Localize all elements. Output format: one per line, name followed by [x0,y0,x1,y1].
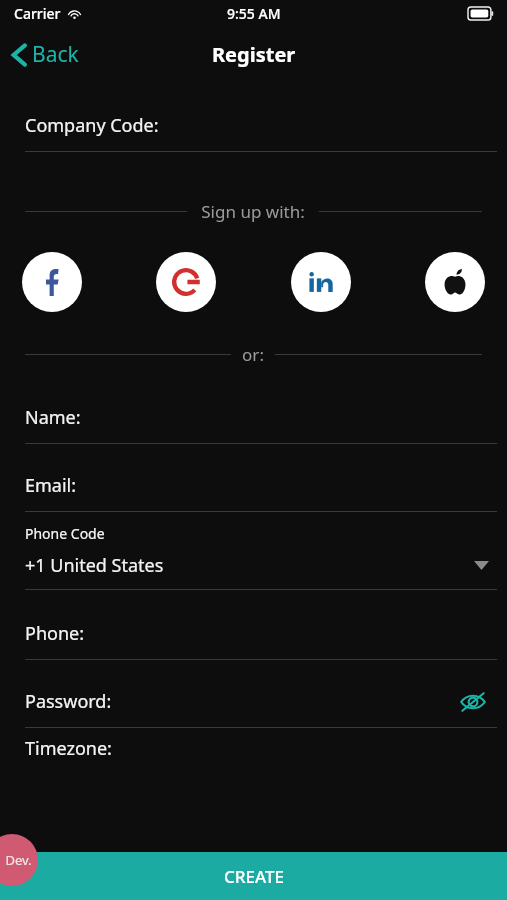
button[interactable]: Sign up with LinkedIn [291,252,351,312]
button[interactable]: +1 United States [0,553,507,578]
button[interactable]: CREATE [0,852,507,900]
staticText: Email: [25,473,77,498]
staticText: Phone Code [25,524,105,543]
staticText: 9:55 AM [227,4,281,23]
staticText: or: [242,343,264,366]
staticText: Company Code: [25,113,159,138]
button[interactable]: Back [0,34,93,75]
button[interactable]: Sign up with Apple [425,252,485,312]
button[interactable]: Sign up with Facebook [22,252,82,312]
staticText: Timezone: [25,736,112,761]
staticText: Name: [25,405,81,430]
staticText: Sign up with: [201,200,305,223]
button[interactable]: Show password [459,691,507,713]
staticText: Password: [25,689,112,714]
button[interactable]: Dev. [0,834,38,886]
staticText: Phone: [25,621,85,646]
staticText: Register [212,41,296,68]
button[interactable]: Sign up with Google [156,252,216,312]
staticText: Carrier [14,4,61,23]
staticText: +1 United States [25,553,164,578]
staticText: Dev. [5,851,32,869]
staticText: Back [32,40,79,69]
staticText: CREATE [224,865,284,888]
